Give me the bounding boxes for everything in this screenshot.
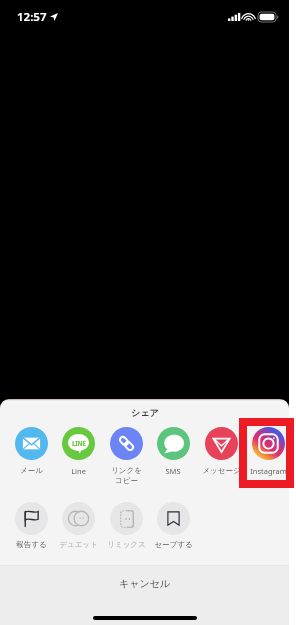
staticText: Line bbox=[71, 466, 86, 476]
button[interactable]: Line bbox=[54, 427, 102, 476]
staticText: シェア bbox=[131, 407, 159, 418]
staticText: メッセージ bbox=[202, 466, 241, 475]
button[interactable]: Messages bbox=[197, 427, 245, 475]
button[interactable]: Mail bbox=[7, 427, 55, 475]
other: Messages bbox=[205, 427, 238, 460]
other: Remix bbox=[117, 509, 137, 529]
button[interactable]: Copy link bbox=[102, 427, 150, 485]
other: Copy link bbox=[110, 427, 143, 460]
staticText: 報告する bbox=[16, 540, 47, 549]
staticText: LINE bbox=[72, 439, 86, 447]
button[interactable]: SMS bbox=[149, 427, 197, 476]
other: Instagram bbox=[252, 427, 285, 460]
button[interactable]: Instagram bbox=[244, 427, 289, 476]
staticText: メール bbox=[20, 466, 43, 475]
other: Report bbox=[22, 509, 41, 528]
button[interactable]: Save bbox=[149, 502, 197, 549]
button[interactable]: Report bbox=[7, 502, 55, 549]
staticText: Instagram bbox=[250, 466, 287, 476]
button[interactable]: Duet bbox=[54, 502, 102, 549]
button[interactable]: Remix bbox=[102, 502, 150, 549]
staticText: SMS bbox=[165, 466, 181, 476]
other: Duet bbox=[68, 508, 89, 529]
button[interactable]: キャンセル bbox=[0, 566, 289, 625]
staticText: 12:57 bbox=[17, 9, 47, 25]
other: SMS bbox=[157, 427, 190, 460]
staticText: セーブする bbox=[154, 540, 193, 549]
staticText: リミックス bbox=[107, 540, 146, 549]
staticText: デュエット bbox=[59, 540, 98, 549]
staticText: リンクを コピー bbox=[111, 466, 142, 485]
other: Line bbox=[62, 427, 95, 460]
other: Save bbox=[164, 509, 183, 528]
other: Mail bbox=[15, 427, 48, 460]
staticText: キャンセル bbox=[119, 577, 171, 590]
